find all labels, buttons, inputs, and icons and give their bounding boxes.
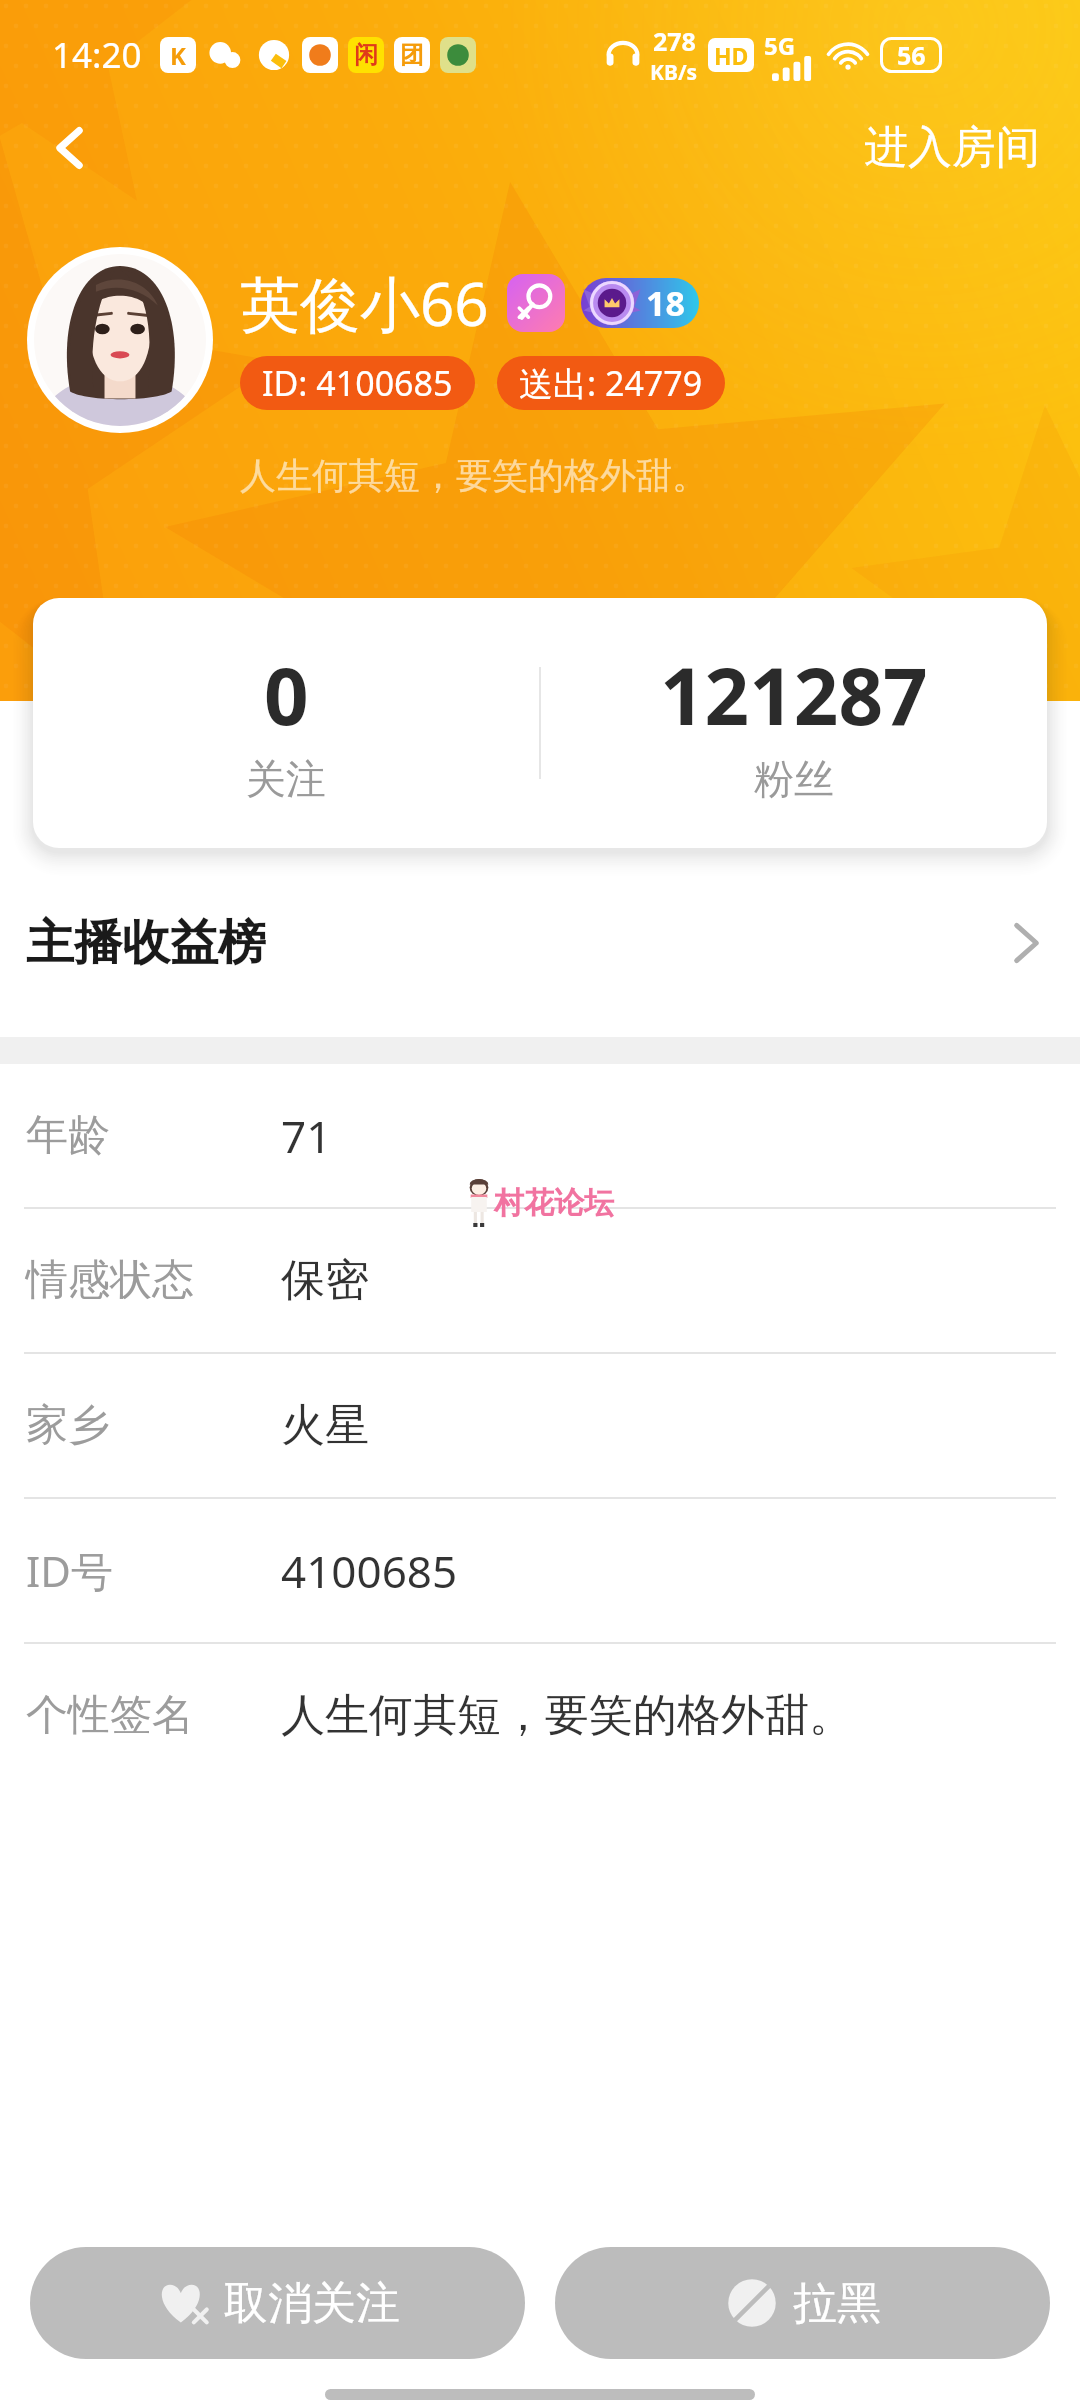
- staticText: KB/s: [650, 58, 698, 87]
- staticText: ID号: [26, 1542, 113, 1599]
- staticText: 14:20: [52, 31, 142, 79]
- staticText: 5G: [764, 29, 796, 62]
- staticText: 村花论坛: [494, 1184, 614, 1222]
- staticText: 送出: 24779: [519, 360, 703, 406]
- button[interactable]: ID号: [0, 1499, 1080, 1642]
- staticText: 71: [281, 1106, 332, 1166]
- staticText: 拉黑: [793, 2276, 881, 2331]
- staticText: 18: [646, 280, 685, 326]
- staticText: 火星: [281, 1398, 369, 1453]
- staticText: 4100685: [281, 1541, 458, 1601]
- staticText: 人生何其短，要笑的格外甜。: [281, 1688, 853, 1743]
- staticText: 英俊小66: [240, 262, 489, 344]
- button[interactable]: 取消关注: [30, 2247, 525, 2359]
- button[interactable]: 家乡: [0, 1354, 1080, 1497]
- staticText: 保密: [281, 1253, 369, 1308]
- staticText: 团: [400, 40, 424, 70]
- staticText: 闲: [354, 40, 378, 70]
- staticText: 278: [653, 24, 696, 58]
- button[interactable]: 个性签名: [0, 1644, 1080, 1787]
- button[interactable]: Gender: [507, 274, 565, 332]
- button[interactable]: 年龄: [0, 1064, 1080, 1207]
- button[interactable]: Level 18: [581, 274, 699, 332]
- staticText: HD: [714, 40, 749, 71]
- button[interactable]: 0: [33, 598, 539, 848]
- button[interactable]: 拉黑: [555, 2247, 1050, 2359]
- staticText: 56: [897, 38, 926, 72]
- button[interactable]: 情感状态: [0, 1209, 1080, 1352]
- button[interactable]: Back: [24, 102, 116, 194]
- button[interactable]: ID: 4100685: [240, 356, 475, 410]
- staticText: 主播收益榜: [26, 913, 266, 973]
- staticText: 0: [264, 642, 309, 748]
- button[interactable]: 送出: 24779: [497, 356, 725, 410]
- staticText: K: [170, 39, 186, 72]
- staticText: 年龄: [26, 1109, 110, 1162]
- staticText: ID: 4100685: [262, 360, 453, 406]
- staticText: 个性签名: [26, 1689, 194, 1742]
- button[interactable]: 进入房间: [824, 104, 1080, 191]
- staticText: 情感状态: [26, 1254, 194, 1307]
- staticText: 家乡: [26, 1399, 110, 1452]
- staticText: 121287: [660, 642, 928, 748]
- staticText: 取消关注: [224, 2276, 400, 2331]
- button[interactable]: 121287: [541, 598, 1047, 848]
- staticText: 粉丝: [754, 754, 834, 804]
- staticText: 人生何其短，要笑的格外甜。: [240, 453, 708, 498]
- staticText: 关注: [246, 754, 326, 804]
- button[interactable]: 主播收益榜: [0, 848, 1080, 1037]
- staticText: 进入房间: [864, 120, 1040, 175]
